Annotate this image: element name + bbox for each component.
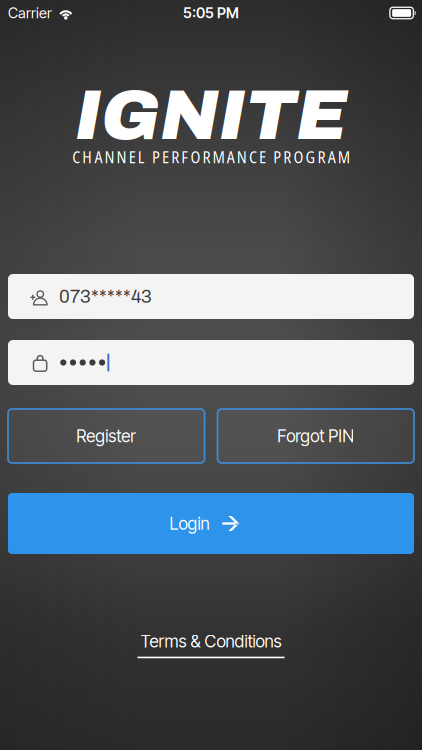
staticText: Terms & Conditions bbox=[140, 631, 281, 652]
staticText: Login bbox=[170, 513, 210, 534]
button[interactable] bbox=[8, 340, 414, 385]
button[interactable]: Forgot PIN bbox=[217, 409, 414, 463]
staticText: Forgot PIN bbox=[277, 426, 354, 446]
staticText: 5:05 PM bbox=[183, 4, 239, 22]
staticText: Register bbox=[76, 426, 136, 446]
staticText: IGNITE bbox=[75, 77, 347, 154]
button[interactable]: Register bbox=[8, 409, 204, 463]
button[interactable]: 073*****43 bbox=[8, 274, 414, 319]
button[interactable]: Terms & Conditions bbox=[137, 631, 284, 658]
staticText: CHANNEL PERFORMANCE PROGRAM bbox=[72, 146, 350, 168]
button[interactable]: Login bbox=[8, 493, 414, 554]
staticText: Carrier bbox=[8, 4, 52, 22]
staticText: 073*****43 bbox=[59, 286, 152, 307]
